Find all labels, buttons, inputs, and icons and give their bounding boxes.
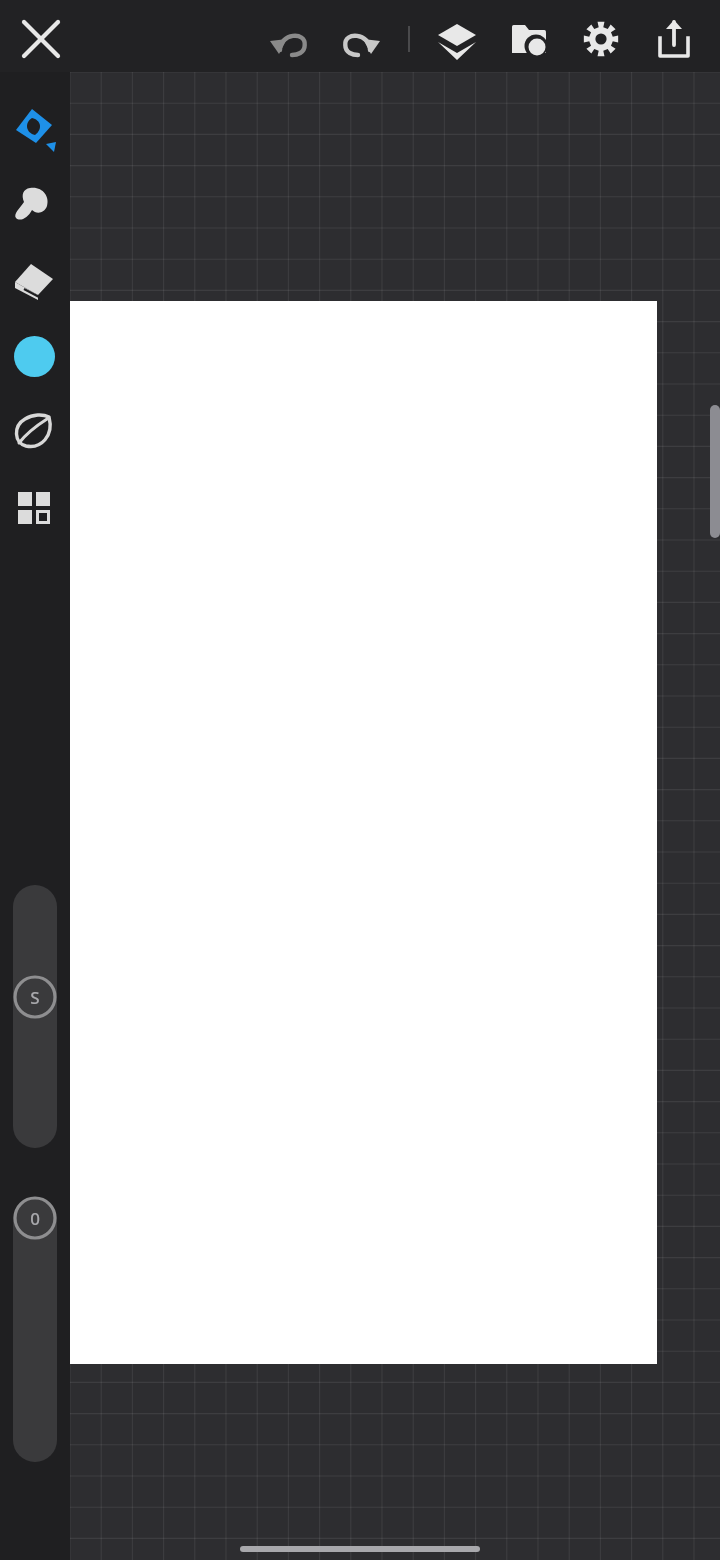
button[interactable]: Smudge [6,176,62,232]
button[interactable]: Slider handle S [12,974,58,1020]
button[interactable]: Blend [6,404,62,460]
button[interactable]: Brush [6,100,62,156]
button[interactable]: Open project [501,11,557,67]
button[interactable]: Slider handle 0 [12,1195,58,1241]
staticText: 0 [30,1207,40,1230]
button[interactable]: Slider [13,1199,57,1462]
button[interactable]: Colour [14,336,55,377]
button[interactable]: Share [646,11,702,67]
staticText: S [30,986,40,1009]
button[interactable]: Patterns [6,480,62,536]
button[interactable]: Redo [329,11,385,67]
button[interactable]: Slider [13,885,57,1148]
button[interactable]: Undo [265,11,321,67]
button[interactable]: Layers [429,11,485,67]
button[interactable]: Settings [573,11,629,67]
button[interactable]: Eraser [6,252,62,308]
button[interactable]: Close [13,11,69,67]
